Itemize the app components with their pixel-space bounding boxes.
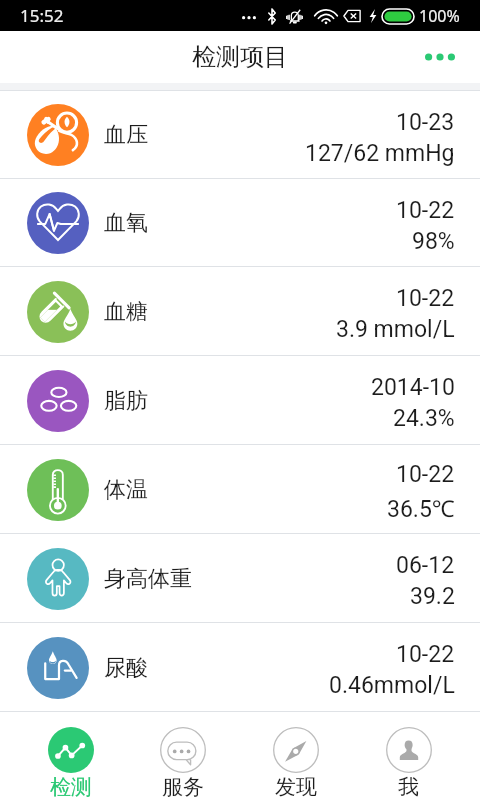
button[interactable]: 血糖 [0,267,480,356]
staticText: 我 [398,774,419,800]
staticText: 10-22 [396,197,455,224]
staticText: 脂肪 [104,387,148,415]
staticText: 100% [419,5,460,27]
staticText: 0.46mmol/L [329,672,455,699]
button[interactable]: 体温 [0,445,480,534]
staticText: 体温 [104,476,148,504]
staticText: 10-22 [396,641,455,668]
button[interactable]: 身高体重 [0,534,480,623]
staticText: 检测 [50,774,92,800]
staticText: 10-22 [396,285,455,312]
staticText: 15:52 [20,4,64,27]
staticText: 10-22 [396,461,455,488]
button[interactable]: 尿酸 [0,623,480,712]
staticText: 3.9 mmol/L [336,316,455,343]
staticText: 血糖 [104,298,148,326]
button[interactable]: 服务 [127,712,239,800]
button[interactable]: 血压 [0,91,480,179]
button[interactable]: More options [416,35,464,79]
button[interactable]: 我 [352,712,465,800]
staticText: 尿酸 [104,654,148,682]
button[interactable]: 检测 [15,712,127,800]
staticText: 39.2 [410,583,455,610]
staticText: 血压 [104,121,148,149]
staticText: 血氧 [104,209,148,237]
staticText: 98% [412,228,455,255]
button[interactable]: 发现 [239,712,352,800]
staticText: 24.3% [393,405,455,432]
staticText: 10-23 [396,109,455,136]
staticText: 36.5℃ [387,492,455,523]
staticText: 06-12 [396,552,455,579]
staticText: 服务 [162,774,204,800]
staticText: 身高体重 [104,565,192,593]
staticText: 发现 [275,774,317,800]
button[interactable]: 脂肪 [0,356,480,445]
staticText: 检测项目 [192,42,288,72]
staticText: 2014-10 [371,374,455,401]
button[interactable]: 血氧 [0,179,480,267]
staticText: 127/62 mmHg [305,140,455,167]
